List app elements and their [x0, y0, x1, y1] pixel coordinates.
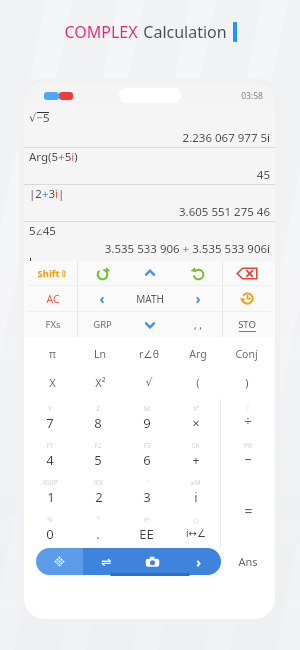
button[interactable]: STO [223, 312, 271, 337]
staticText: F1 [46, 441, 54, 450]
button[interactable]: Cursor right [174, 286, 222, 311]
staticText: ° [97, 515, 100, 524]
staticText: 0 [46, 525, 54, 543]
staticText: i [194, 488, 198, 506]
button[interactable]: Arg [173, 339, 222, 368]
button[interactable]: Redo [78, 261, 126, 285]
staticText: › [196, 553, 201, 571]
button[interactable]: Undo [174, 261, 222, 285]
button[interactable]: ○ [171, 510, 220, 547]
staticText: ÷ [244, 412, 252, 430]
button[interactable]: GRP [78, 312, 126, 337]
staticText: 2 [95, 488, 103, 506]
staticText: ▸M [191, 478, 201, 487]
staticText: Z [96, 404, 100, 413]
button[interactable]: π [28, 339, 76, 368]
staticText: X² [95, 375, 106, 390]
staticText: r∠θ [139, 347, 159, 361]
button[interactable]: Delete [223, 261, 271, 285]
button[interactable]: History [223, 286, 271, 311]
button[interactable]: Conj [222, 339, 271, 368]
button[interactable]: x° [171, 399, 220, 436]
button[interactable]: Scroll up [126, 261, 174, 285]
staticText: ⦙ [247, 405, 249, 412]
staticText: Conj [235, 347, 258, 361]
button[interactable]: ) [222, 368, 271, 397]
button[interactable]: √ [124, 368, 173, 397]
staticText: 5 [94, 451, 102, 469]
staticText: = [244, 501, 253, 520]
button[interactable]: Z [74, 399, 122, 436]
button[interactable]: Scroll down [126, 312, 174, 337]
button[interactable]: % [26, 510, 74, 547]
button[interactable]: Camera [129, 548, 175, 575]
staticText: X [49, 375, 56, 390]
staticText: 03:58 [241, 90, 263, 102]
staticText: 4 [46, 451, 54, 469]
button[interactable]: FXs [28, 312, 77, 337]
button[interactable]: r∠θ [124, 339, 173, 368]
button[interactable]: ° [74, 510, 122, 547]
button[interactable]: CR [171, 436, 220, 473]
button[interactable]: ( [173, 368, 222, 397]
staticText: 2.236 067 977 5i [182, 130, 270, 146]
staticText: ‹ [99, 289, 105, 308]
button[interactable]: Next [175, 548, 221, 575]
staticText: 3 [143, 488, 151, 506]
staticText: 1 [47, 488, 55, 506]
staticText: M [144, 404, 150, 413]
button[interactable]: Keypad [36, 548, 83, 575]
staticText: 6 [143, 451, 151, 469]
button[interactable]: F2 [74, 436, 122, 473]
button[interactable]: AC [28, 286, 77, 311]
staticText: › [195, 289, 201, 308]
button[interactable]: ⦙ [221, 399, 275, 436]
staticText: Arg(5+5i) [29, 149, 78, 165]
button[interactable]: M [122, 399, 171, 436]
button[interactable]: Swap [83, 548, 129, 575]
staticText: STO [238, 318, 256, 331]
button[interactable]: Ans [221, 548, 275, 575]
staticText: MATH [136, 292, 164, 306]
staticText: π [49, 347, 56, 361]
staticText: iGRP [43, 478, 58, 487]
staticText: √ [145, 376, 153, 389]
staticText: ⇌ [101, 555, 112, 569]
button[interactable]: √−5 [24, 109, 275, 147]
button[interactable]: 5∠45 [24, 222, 275, 258]
staticText: 3.535 533 906 + 3.535 533 906i [104, 241, 270, 257]
button[interactable]: Cursor left [78, 286, 126, 311]
button[interactable]: iGRP [26, 473, 74, 510]
staticText: Arg [189, 347, 207, 361]
button[interactable]: eˣ [122, 510, 171, 547]
button[interactable]: F3 [122, 436, 171, 473]
staticText: 5∠45 [29, 223, 56, 239]
button[interactable]: iFX [74, 473, 122, 510]
button[interactable]: , , [174, 312, 222, 337]
button[interactable]: |2+3i| [24, 185, 275, 221]
button[interactable]: Y [26, 399, 74, 436]
staticText: F3 [143, 441, 151, 450]
button[interactable]: ′ [122, 473, 171, 510]
staticText: + [192, 451, 200, 469]
button[interactable]: X² [76, 368, 124, 397]
staticText: PR [244, 441, 252, 450]
button[interactable]: X [28, 368, 76, 397]
button[interactable]: F1 [26, 436, 74, 473]
button[interactable]: = [221, 473, 275, 547]
staticText: COMPLEX [64, 21, 138, 43]
staticText: i↔∠ [186, 526, 206, 540]
staticText: − [244, 450, 252, 468]
button[interactable]: Ln [76, 339, 124, 368]
button[interactable]: ▸M [171, 473, 220, 510]
staticText: 45 [256, 167, 270, 183]
button[interactable]: Arg(5+5i) [24, 148, 275, 184]
staticText: ○ [193, 517, 199, 525]
button[interactable]: Shift⇧ [28, 261, 77, 285]
staticText: Ans [238, 554, 258, 569]
button[interactable]: PR [221, 436, 275, 473]
button[interactable]: MATH [126, 286, 174, 311]
staticText: × [192, 414, 200, 432]
staticText: ( [196, 375, 200, 390]
staticText: x° [193, 404, 200, 413]
